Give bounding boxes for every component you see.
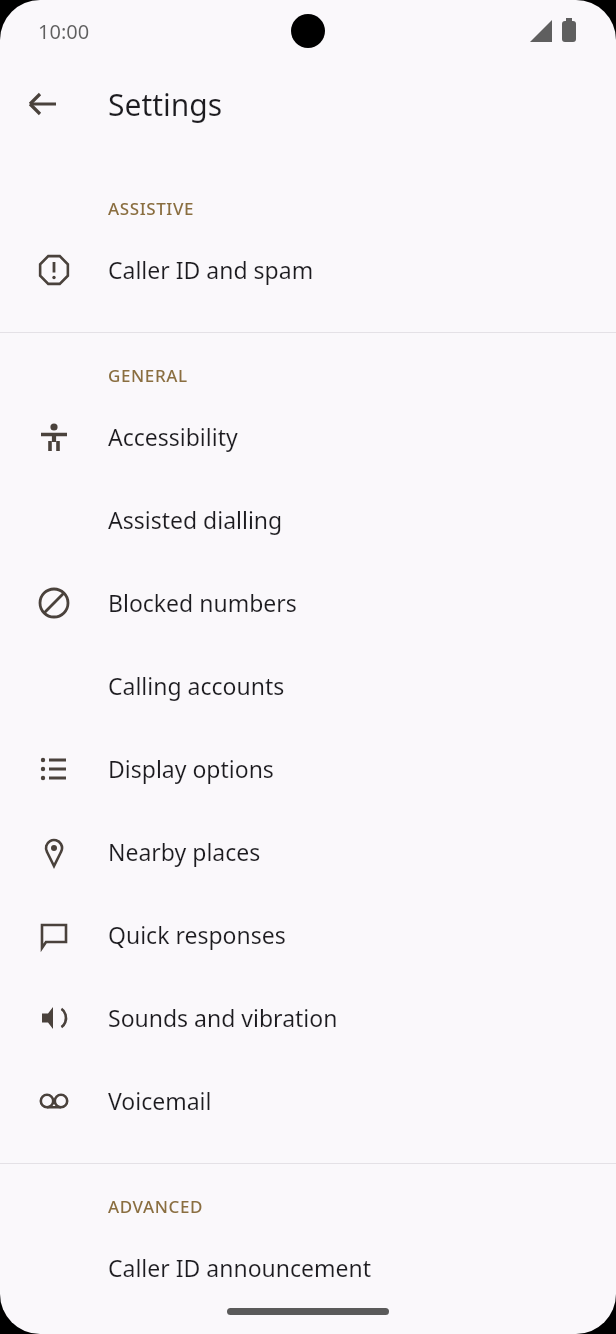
staticText: Settings bbox=[108, 84, 223, 125]
button[interactable]: Assisted dialling bbox=[0, 478, 616, 561]
staticText: Voicemail bbox=[108, 1085, 212, 1116]
staticText: 10:00 bbox=[38, 18, 90, 45]
staticText: Caller ID announcement bbox=[108, 1252, 372, 1283]
button[interactable]: Display options bbox=[0, 727, 616, 810]
button[interactable]: Back bbox=[15, 76, 71, 132]
staticText: Accessibility bbox=[108, 421, 238, 452]
button[interactable]: Accessibility bbox=[0, 395, 616, 478]
staticText: Nearby places bbox=[108, 836, 261, 867]
button[interactable]: Caller ID and spam bbox=[0, 228, 616, 311]
button[interactable]: Calling accounts bbox=[0, 644, 616, 727]
staticText: Assisted dialling bbox=[108, 504, 283, 535]
button[interactable]: Caller ID announcement bbox=[0, 1226, 616, 1309]
staticText: ADVANCED bbox=[108, 1195, 203, 1218]
button[interactable]: Sounds and vibration bbox=[0, 976, 616, 1059]
staticText: Calling accounts bbox=[108, 670, 285, 701]
staticText: Blocked numbers bbox=[108, 587, 297, 618]
staticText: ASSISTIVE bbox=[108, 197, 195, 220]
button[interactable]: Blocked numbers bbox=[0, 561, 616, 644]
button[interactable]: Voicemail bbox=[0, 1059, 616, 1142]
staticText: Display options bbox=[108, 753, 274, 784]
staticText: Sounds and vibration bbox=[108, 1002, 338, 1033]
staticText: Quick responses bbox=[108, 919, 286, 950]
staticText: Caller ID and spam bbox=[108, 254, 314, 285]
staticText: GENERAL bbox=[108, 364, 188, 387]
button[interactable]: Quick responses bbox=[0, 893, 616, 976]
button[interactable]: Nearby places bbox=[0, 810, 616, 893]
